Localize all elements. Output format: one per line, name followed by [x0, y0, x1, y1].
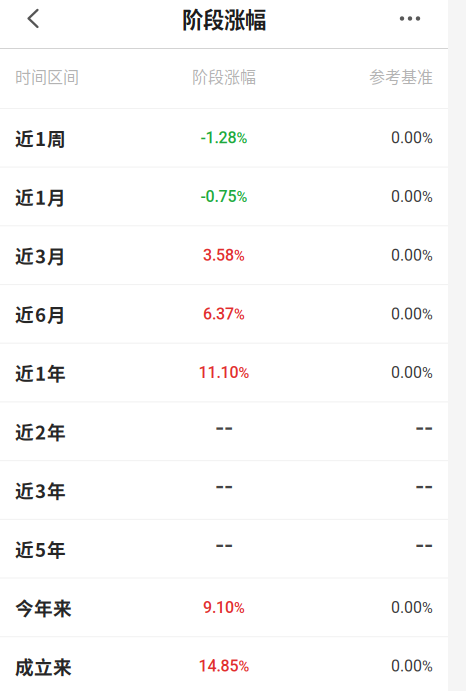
- button[interactable]: 近 6 月: [0, 285, 448, 343]
- staticText: 14.85%: [198, 657, 249, 675]
- staticText: 近 3 月: [15, 242, 66, 269]
- staticText: --: [215, 474, 233, 498]
- staticText: -0.75%: [200, 187, 247, 206]
- staticText: 阶段涨幅: [182, 3, 266, 34]
- button[interactable]: 今年来: [0, 579, 448, 636]
- staticText: 0.00%: [391, 363, 433, 382]
- staticText: 0.00%: [391, 305, 433, 323]
- staticText: 近 5 年: [15, 535, 66, 562]
- button[interactable]: 近 3 年: [0, 461, 448, 519]
- staticText: 0.00%: [391, 129, 433, 147]
- staticText: 0.00%: [391, 246, 433, 264]
- staticText: -1.28%: [200, 129, 247, 147]
- button[interactable]: 近 3 月: [0, 226, 448, 284]
- staticText: --: [215, 415, 233, 439]
- button[interactable]: 近 1 年: [0, 344, 448, 401]
- staticText: 参考基准: [369, 64, 433, 88]
- button[interactable]: Back: [0, 0, 66, 37]
- button[interactable]: 近 5 年: [0, 520, 448, 578]
- button[interactable]: More options: [372, 0, 448, 37]
- staticText: --: [415, 533, 433, 557]
- button[interactable]: 近 1 月: [0, 168, 448, 225]
- staticText: 0.00%: [391, 657, 433, 675]
- staticText: 阶段涨幅: [192, 64, 256, 88]
- staticText: 11.10%: [198, 363, 249, 382]
- staticText: 0.00%: [391, 187, 433, 206]
- staticText: 6.37%: [203, 305, 245, 323]
- staticText: 今年来: [15, 594, 72, 621]
- staticText: --: [415, 474, 433, 498]
- staticText: 3.58%: [203, 246, 245, 264]
- staticText: 9.10%: [203, 598, 245, 617]
- staticText: --: [215, 533, 233, 557]
- staticText: 0.00%: [391, 598, 433, 617]
- staticText: 近 6 月: [15, 300, 66, 327]
- staticText: 近 1 年: [15, 359, 66, 386]
- staticText: 近 3 年: [15, 476, 66, 503]
- staticText: --: [415, 415, 433, 439]
- button[interactable]: 近 1 周: [0, 109, 448, 167]
- button[interactable]: 近 2 年: [0, 402, 448, 460]
- staticText: 近 1 月: [15, 183, 66, 210]
- staticText: 时间区间: [15, 64, 79, 88]
- button[interactable]: 成立来: [0, 637, 448, 691]
- staticText: 近 1 周: [15, 124, 66, 151]
- staticText: 近 2 年: [15, 418, 66, 445]
- staticText: 成立来: [15, 653, 72, 680]
